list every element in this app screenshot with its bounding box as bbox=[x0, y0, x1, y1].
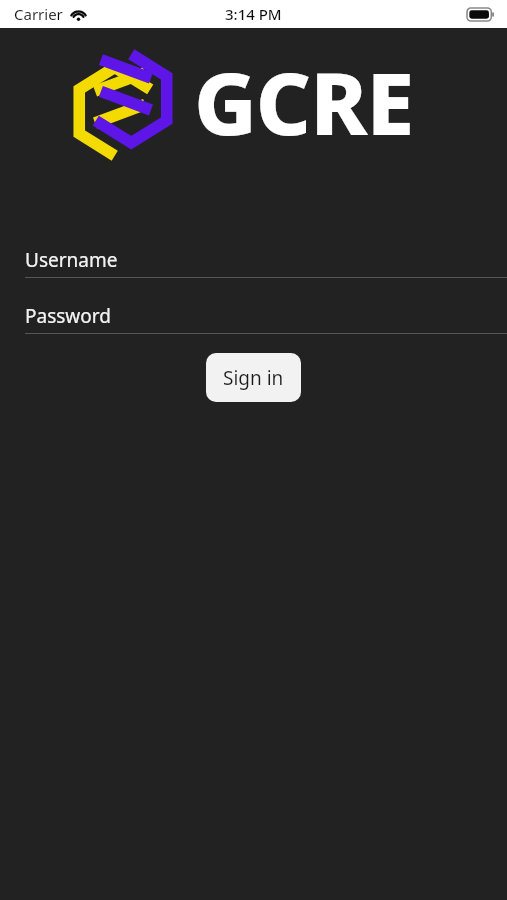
staticText: GCRE bbox=[194, 43, 414, 160]
staticText: Username bbox=[25, 247, 118, 273]
staticText: Carrier bbox=[14, 4, 63, 24]
staticText: Password bbox=[25, 303, 111, 329]
button[interactable]: Username bbox=[0, 242, 507, 278]
staticText: 3:14 PM bbox=[225, 4, 282, 24]
button[interactable]: Password bbox=[0, 298, 507, 334]
staticText: Sign in bbox=[223, 365, 284, 391]
button[interactable]: Sign in bbox=[206, 353, 301, 402]
